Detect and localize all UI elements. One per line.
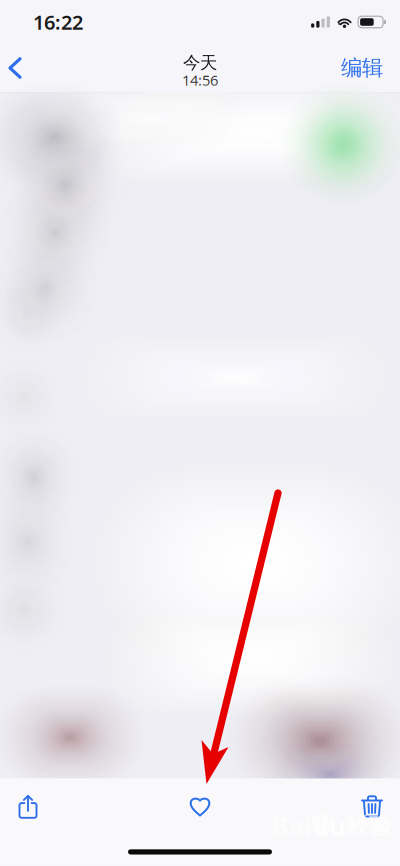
button[interactable]: Back	[0, 46, 37, 90]
button[interactable]: Favorite	[172, 781, 228, 831]
button[interactable]: 编辑	[333, 46, 391, 90]
staticText: 今天	[183, 52, 217, 73]
staticText: 经验	[346, 812, 392, 840]
button[interactable]: Share	[0, 781, 56, 831]
button[interactable]: Delete	[344, 781, 400, 831]
staticText: 16:22	[33, 9, 83, 35]
staticText: 14:56	[182, 70, 218, 90]
staticText: 编辑	[341, 55, 383, 81]
